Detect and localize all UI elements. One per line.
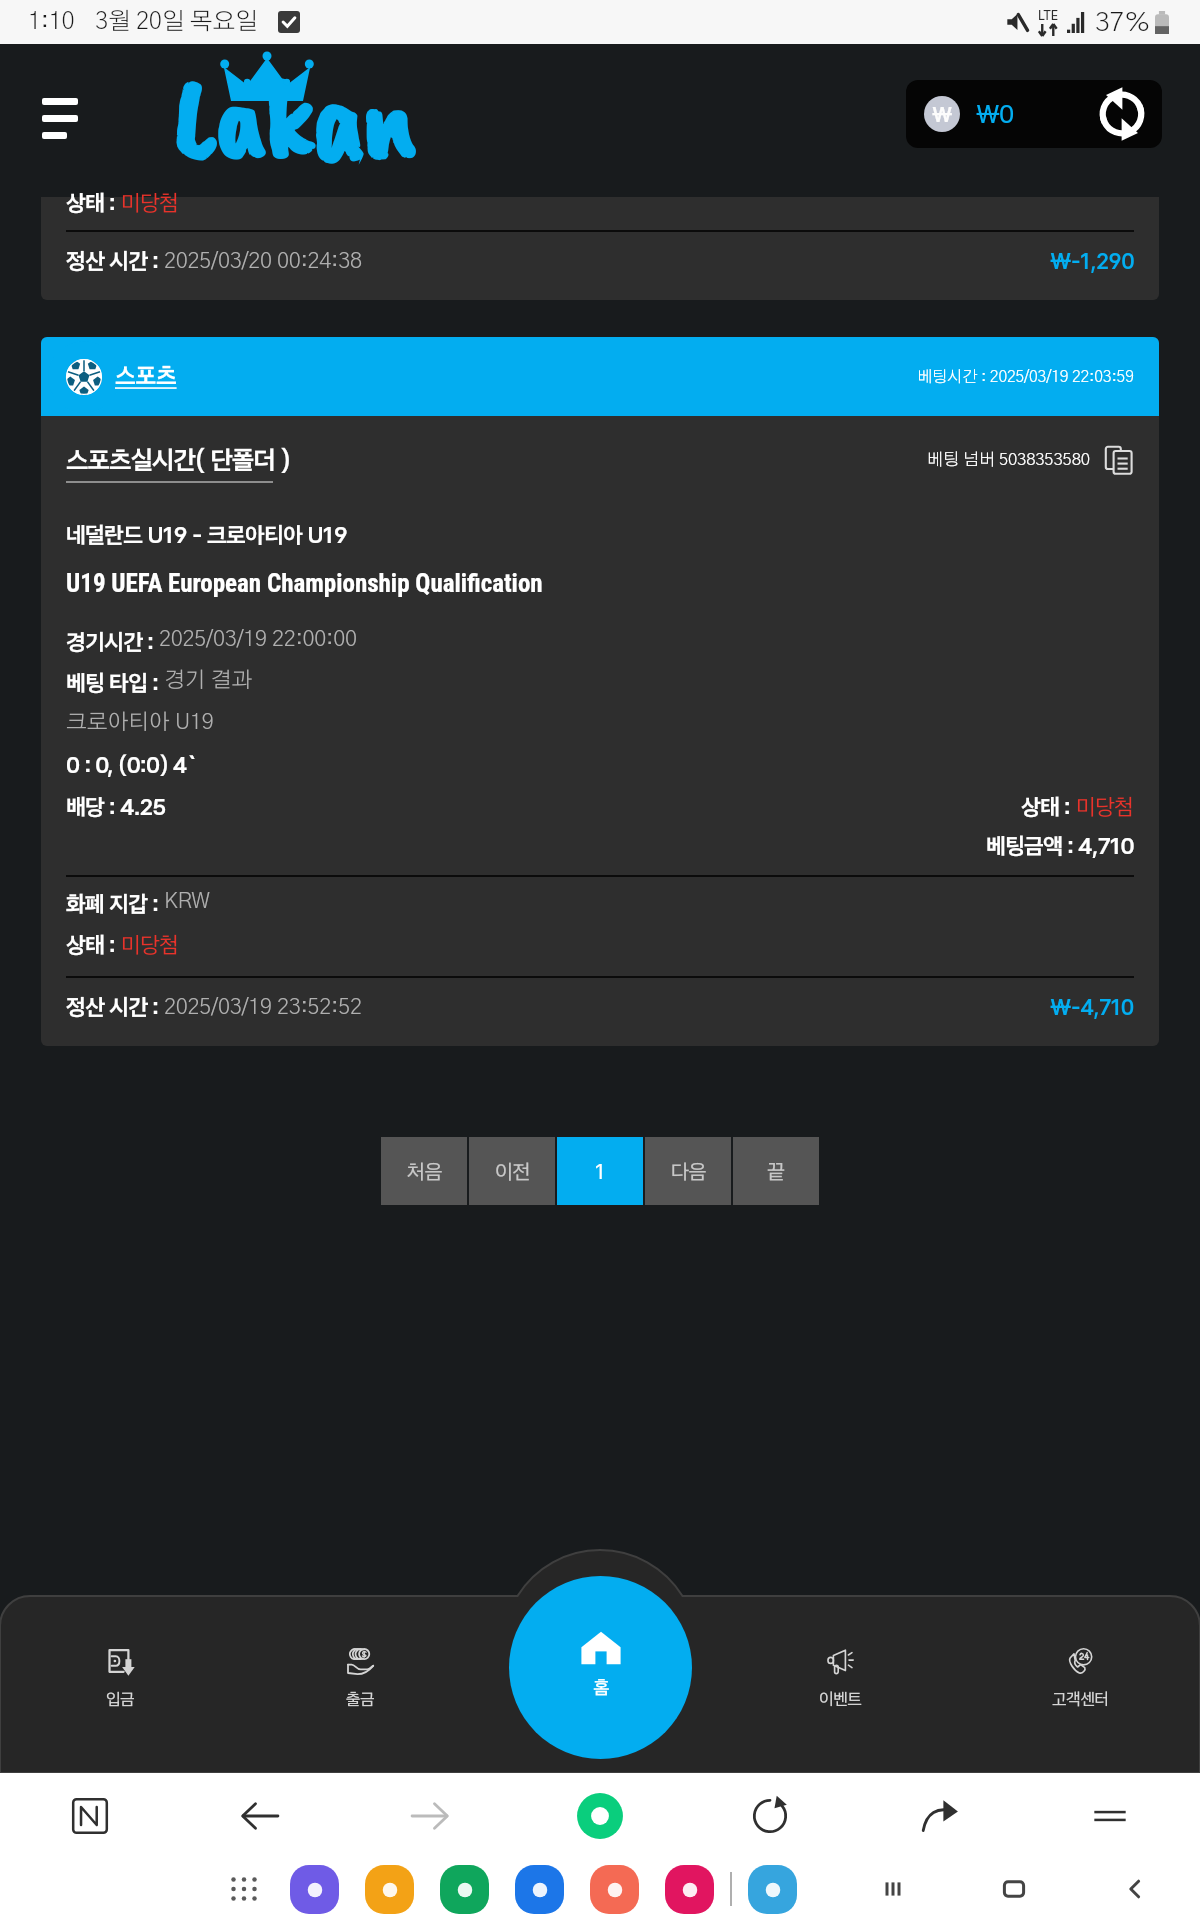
staticText: 홈 — [593, 1676, 609, 1699]
staticText: 화폐 지갑 : — [66, 890, 164, 917]
button[interactable]: Reader mode — [62, 1788, 118, 1844]
button[interactable]: Reload — [742, 1788, 798, 1844]
button[interactable]: 1 — [557, 1137, 643, 1205]
staticText: 이벤트 — [819, 1689, 862, 1709]
staticText: 스포츠 — [115, 361, 177, 390]
button[interactable]: 처음 — [381, 1137, 467, 1205]
button[interactable]: Contacts — [590, 1865, 639, 1914]
staticText: 2025/03/20 00:24:38 — [164, 250, 362, 272]
staticText: 상태 : — [66, 189, 121, 216]
button[interactable]: Recents — [868, 1864, 918, 1914]
button[interactable]: Home — [989, 1864, 1039, 1914]
staticText: ₩-1,290 — [1050, 248, 1134, 274]
button[interactable]: Telegram — [748, 1865, 797, 1914]
staticText: 3월 20일 목요일 — [95, 10, 258, 34]
staticText: 정산 시간 : — [66, 993, 164, 1020]
staticText: LTE — [1038, 8, 1059, 24]
button[interactable]: 출금 — [240, 1646, 480, 1709]
staticText: 베팅 넘버 5038353580 — [927, 451, 1090, 468]
button[interactable]: Menu — [34, 90, 86, 147]
staticText: 정산 시간 : — [66, 247, 164, 274]
staticText: 네덜란드 U19 - 크로아티아 U19 — [66, 521, 348, 548]
staticText: 처음 — [407, 1159, 442, 1184]
button[interactable]: Messages — [515, 1865, 564, 1914]
staticText: 1:10 — [28, 10, 75, 34]
button[interactable]: Copy betting number — [1104, 445, 1134, 475]
staticText: 1 — [595, 1159, 605, 1184]
button[interactable]: Forward — [402, 1788, 458, 1844]
staticText: 이전 — [495, 1159, 530, 1184]
staticText: 고객센터 — [1052, 1689, 1109, 1709]
button[interactable]: 고객센터 — [960, 1646, 1200, 1709]
button[interactable]: Menu — [1082, 1788, 1138, 1844]
staticText: 미당첨 — [121, 189, 179, 216]
button[interactable]: Home — [572, 1788, 628, 1844]
button[interactable]: 다음 — [645, 1137, 731, 1205]
button[interactable]: ₩ — [906, 80, 1162, 148]
staticText: 2025/03/19 23:52:52 — [164, 996, 362, 1018]
staticText: U19 UEFA European Championship Qualifica… — [66, 569, 543, 598]
staticText: 크로아티아 U19 — [66, 711, 214, 733]
button[interactable]: 이전 — [469, 1137, 555, 1205]
staticText: 출금 — [346, 1689, 375, 1709]
staticText: KRW — [164, 890, 210, 912]
staticText: 다음 — [671, 1159, 706, 1184]
staticText: 37% — [1095, 9, 1151, 36]
button[interactable]: Refresh balance — [1096, 88, 1148, 140]
button[interactable]: 스포츠실시간( 단폴더 ) — [66, 444, 290, 475]
button[interactable]: 스포츠 — [66, 337, 1134, 416]
staticText: 상태 : — [1021, 793, 1076, 820]
button[interactable]: Camera — [665, 1865, 714, 1914]
staticText: Lakan — [172, 50, 412, 194]
staticText: 스포츠실시간( 단폴더 ) — [66, 444, 290, 475]
button[interactable]: 이벤트 — [720, 1646, 960, 1709]
staticText: 입금 — [106, 1689, 135, 1709]
staticText: 0 : 0, (0:0) 4` — [66, 751, 197, 778]
staticText: 경기시간 : — [66, 628, 159, 655]
staticText: ₩0 — [976, 99, 1014, 129]
button[interactable]: Internet — [290, 1865, 339, 1914]
staticText: 2025/03/19 22:00:00 — [159, 628, 357, 650]
button[interactable]: Files — [365, 1865, 414, 1914]
staticText: 베팅시간 : 2025/03/19 22:03:59 — [917, 369, 1134, 385]
button[interactable]: Back — [232, 1788, 288, 1844]
button[interactable]: Back — [1110, 1864, 1160, 1914]
staticText: ₩ — [932, 102, 952, 127]
staticText: 경기 결과 — [164, 669, 252, 691]
staticText: 배당 : 4.25 — [66, 793, 166, 820]
staticText: 미당첨 — [1076, 793, 1134, 820]
staticText: 미당첨 — [121, 931, 179, 958]
staticText: 상태 : — [66, 931, 121, 958]
staticText: 베팅 타입 : — [66, 669, 164, 696]
button[interactable]: Apps — [222, 1867, 266, 1911]
button[interactable]: 끝 — [733, 1137, 819, 1205]
button[interactable]: Share — [912, 1788, 968, 1844]
button[interactable]: 입금 — [0, 1646, 240, 1709]
staticText: 베팅금액 : 4,710 — [986, 832, 1134, 859]
staticText: 끝 — [767, 1159, 785, 1184]
staticText: ₩-4,710 — [1050, 994, 1134, 1020]
button[interactable]: 홈 — [509, 1576, 692, 1759]
button[interactable]: Phone — [440, 1865, 489, 1914]
